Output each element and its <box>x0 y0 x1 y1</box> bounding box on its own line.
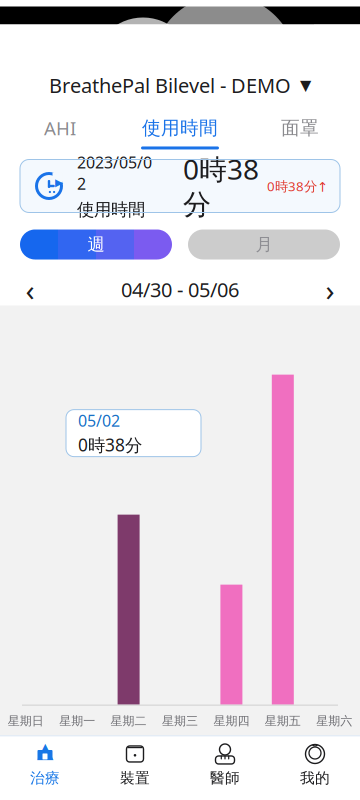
button[interactable]: 醫師 <box>180 739 270 791</box>
staticText: 使用時間 <box>77 199 145 220</box>
button[interactable]: BreathePal Bilevel - DEMO <box>39 66 321 104</box>
staticText: 2023/05/02 <box>77 152 152 194</box>
staticText: 0時38分↑ <box>267 177 328 195</box>
staticText: ‹ <box>25 270 34 309</box>
staticText: 0時38分 <box>78 433 142 456</box>
button[interactable]: 裝置 <box>90 739 180 791</box>
button[interactable]: ▲ <box>0 739 90 791</box>
staticText: 醫師 <box>210 769 240 787</box>
staticText: 星期六 <box>316 714 352 728</box>
staticText: 星期四 <box>213 714 249 728</box>
staticText: › <box>325 270 334 309</box>
staticText: AHI <box>44 116 76 140</box>
button[interactable]: 週 <box>20 229 172 259</box>
staticText: 05/02 <box>78 410 120 431</box>
staticText: 星期日 <box>8 714 44 728</box>
staticText: 裝置 <box>120 769 150 787</box>
staticText: 星期二 <box>111 714 147 728</box>
button[interactable]: AHI <box>0 110 120 147</box>
button[interactable]: 使用時間 <box>120 110 240 147</box>
staticText: 面罩 <box>281 116 319 139</box>
button[interactable]: 月 <box>188 229 340 259</box>
staticText: 週 <box>87 234 104 255</box>
staticText: 星期三 <box>162 714 198 728</box>
staticText: 我的 <box>300 769 330 787</box>
button[interactable]: 面罩 <box>240 110 360 147</box>
staticText: 星期五 <box>265 714 301 728</box>
staticText: 使用時間 <box>142 116 218 139</box>
staticText: 星期一 <box>59 714 95 728</box>
button[interactable]: Previous week <box>8 273 52 305</box>
button[interactable]: Next week <box>308 273 352 305</box>
button[interactable]: 我的 <box>270 739 360 791</box>
staticText: ▲ <box>37 738 53 762</box>
staticText: BreathePal Bilevel - DEMO <box>49 72 291 98</box>
staticText: 治療 <box>30 769 60 787</box>
staticText: ▼ <box>300 77 311 93</box>
staticText: 0時38分 <box>183 150 259 222</box>
staticText: ▸ <box>55 173 63 191</box>
staticText: 月 <box>255 234 272 255</box>
staticText: 04/30 - 05/06 <box>121 276 239 303</box>
